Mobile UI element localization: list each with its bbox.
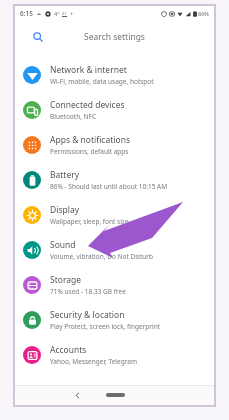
button[interactable]: Sound (15, 232, 214, 267)
button[interactable]: Search settings (23, 24, 206, 50)
staticText: Wi-Fi, mobile, data usage, hotspot (50, 77, 154, 86)
staticText: Storage (50, 274, 82, 286)
staticText: Apps & notifications (50, 134, 130, 146)
button[interactable]: Display (15, 197, 214, 232)
staticText: Yahoo, Messenger, Telegram (50, 357, 137, 366)
staticText: 71% used - 18.33 GB free (50, 287, 126, 296)
staticText: Play Protect, screen lock, fingerprint (50, 322, 161, 331)
button[interactable]: Battery (15, 162, 214, 197)
staticText: Bluetooth, NFC (50, 112, 97, 121)
staticText: Sound (50, 239, 76, 251)
button[interactable]: Network & internet (15, 57, 214, 92)
staticText: 86% - Should last until about 10:15 AM (50, 182, 168, 191)
staticText: Battery (50, 169, 80, 181)
staticText: Permissions, default apps (50, 147, 129, 156)
staticText: 6:15 (20, 9, 33, 18)
staticText: + (70, 10, 74, 17)
staticText: 21 (62, 11, 67, 16)
staticText: Network & internet (50, 64, 127, 76)
button[interactable]: Home (102, 389, 128, 401)
staticText: Search settings (84, 31, 145, 43)
staticText: Security & location (50, 309, 125, 321)
staticText: Wallpaper, sleep, font size (50, 217, 129, 226)
button[interactable]: Back (70, 388, 84, 402)
staticText: 86% (198, 10, 209, 17)
button[interactable]: Connected devices (15, 92, 214, 127)
button[interactable]: Apps & notifications (15, 127, 214, 162)
button[interactable]: Security & location (15, 302, 214, 337)
staticText: Accounts (50, 344, 87, 356)
button[interactable]: Storage (15, 267, 214, 302)
staticText: Connected devices (50, 99, 125, 111)
staticText: 4° (54, 10, 60, 17)
staticText: Volume, vibration, Do Not Disturb (50, 252, 154, 261)
staticText: Display (50, 204, 79, 216)
button[interactable]: Accounts (15, 337, 214, 372)
